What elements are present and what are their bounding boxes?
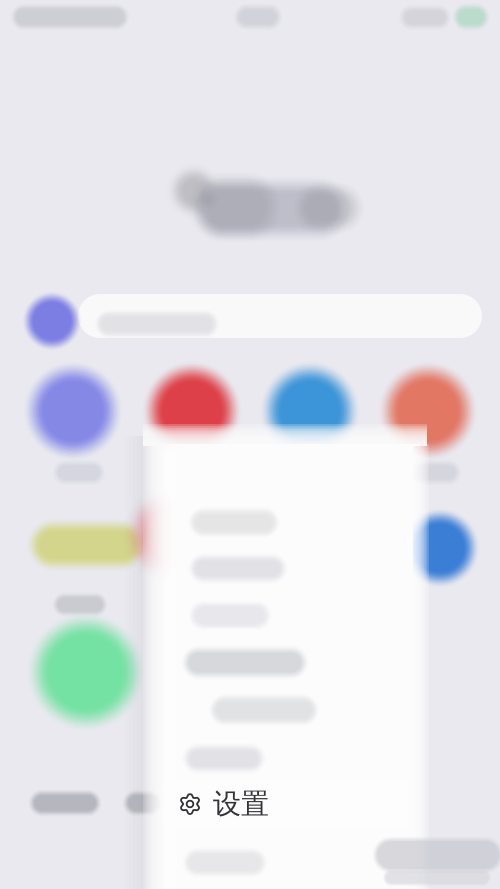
button[interactable]: 设置 xyxy=(165,780,410,828)
staticText: 设置 xyxy=(213,787,269,821)
